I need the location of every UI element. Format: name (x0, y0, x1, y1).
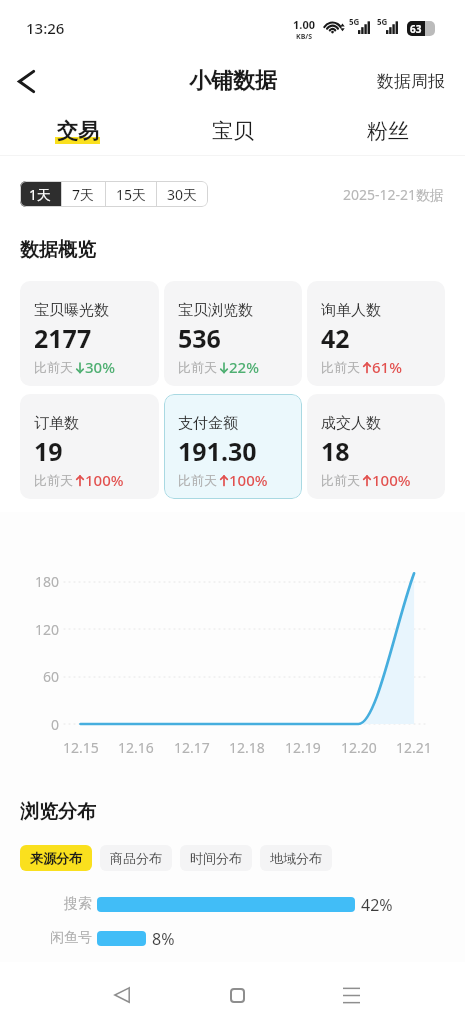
staticText: 12.15 (63, 738, 99, 757)
staticText: 宝贝浏览数 (178, 301, 253, 320)
staticText: 22% (229, 357, 259, 377)
button[interactable]: 数据周报 (377, 71, 445, 92)
staticText: 2177 (34, 321, 92, 355)
staticText: 宝贝 (212, 118, 254, 144)
button[interactable]: 支付金额 (164, 394, 302, 499)
staticText: 时间分布 (190, 850, 242, 866)
button[interactable]: 交易 (0, 107, 155, 155)
staticText: 61% (372, 357, 402, 377)
staticText: 42 (321, 321, 350, 355)
button[interactable]: 15天 (106, 181, 156, 207)
button[interactable]: 粉丝 (310, 107, 465, 155)
staticText: 63 (410, 22, 422, 36)
staticText: 比前天 (34, 359, 73, 375)
button[interactable]: 7天 (62, 181, 105, 207)
staticText: 30% (85, 357, 115, 377)
staticText: 12.20 (341, 738, 377, 757)
staticText: 粉丝 (367, 118, 409, 144)
button[interactable]: Back (99, 972, 145, 1018)
staticText: 比前天 (34, 472, 73, 488)
staticText: 数据概览 (20, 238, 96, 262)
button[interactable]: 来源分布 (20, 845, 92, 871)
staticText: 180 (34, 572, 59, 591)
staticText: 1.00 (293, 17, 315, 32)
staticText: 成交人数 (321, 414, 381, 433)
staticText: 7天 (72, 185, 95, 204)
staticText: 18 (321, 434, 350, 468)
button[interactable]: 时间分布 (180, 845, 252, 871)
staticText: 小铺数据 (189, 67, 277, 95)
staticText: 询单人数 (321, 301, 381, 320)
staticText: 60 (42, 667, 59, 686)
staticText: 0 (50, 715, 59, 734)
staticText: 13:26 (26, 18, 65, 38)
staticText: 191.30 (178, 434, 257, 468)
button[interactable]: 询单人数 (307, 281, 445, 386)
staticText: 浏览分布 (20, 800, 96, 824)
staticText: 100% (372, 470, 411, 490)
staticText: 100% (85, 470, 124, 490)
staticText: 12.21 (396, 738, 432, 757)
staticText: 比前天 (321, 359, 360, 375)
staticText: 12.18 (229, 738, 265, 757)
button[interactable]: Recents (328, 972, 374, 1018)
button[interactable]: 1天 (20, 181, 61, 207)
staticText: 闲鱼号 (50, 929, 92, 947)
button[interactable]: 地域分布 (260, 845, 332, 871)
staticText: 100% (229, 470, 268, 490)
button[interactable]: 宝贝曝光数 (20, 281, 159, 386)
staticText: 536 (178, 321, 221, 355)
staticText: 2025-12-21数据 (343, 185, 445, 204)
staticText: KB/S (296, 32, 313, 42)
button[interactable]: Home (214, 972, 260, 1018)
button[interactable]: 商品分布 (100, 845, 172, 871)
staticText: 商品分布 (110, 850, 162, 866)
staticText: 12.16 (118, 738, 154, 757)
staticText: 比前天 (178, 359, 217, 375)
staticText: 1天 (29, 185, 52, 204)
staticText: 19 (34, 434, 63, 468)
button[interactable]: 宝贝 (155, 107, 310, 155)
staticText: 订单数 (34, 414, 79, 433)
staticText: 5G (377, 16, 388, 27)
staticText: 120 (34, 620, 59, 639)
staticText: 8% (152, 928, 175, 948)
staticText: 搜索 (64, 895, 92, 913)
staticText: 12.19 (285, 738, 321, 757)
staticText: 来源分布 (30, 850, 82, 866)
staticText: 42% (361, 894, 393, 914)
button[interactable]: Back (9, 64, 43, 98)
staticText: 12.17 (174, 738, 210, 757)
button[interactable]: 订单数 (20, 394, 159, 499)
staticText: 数据周报 (377, 71, 445, 92)
staticText: 交易 (57, 118, 99, 144)
button[interactable]: 30天 (157, 181, 208, 207)
staticText: 宝贝曝光数 (34, 301, 109, 320)
staticText: 15天 (116, 185, 147, 204)
staticText: 支付金额 (178, 414, 238, 433)
button[interactable]: 成交人数 (307, 394, 445, 499)
button[interactable]: 宝贝浏览数 (164, 281, 302, 386)
staticText: 比前天 (321, 472, 360, 488)
staticText: 比前天 (178, 472, 217, 488)
staticText: 5G (349, 16, 360, 27)
staticText: 地域分布 (270, 850, 322, 866)
staticText: 30天 (167, 185, 198, 204)
